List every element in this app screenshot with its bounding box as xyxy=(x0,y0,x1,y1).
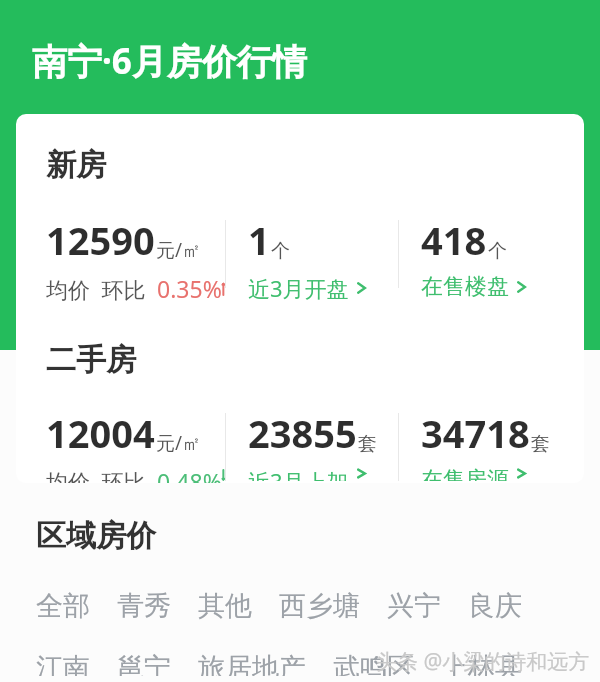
staticText: 全部 xyxy=(36,589,90,623)
staticText: 元/㎡ xyxy=(156,237,202,263)
staticText: 元/㎡ xyxy=(156,430,202,456)
staticText: 南宁·6月房价行情 xyxy=(32,37,307,85)
button[interactable]: 武鸣区 xyxy=(333,645,414,682)
button[interactable]: 全部 xyxy=(36,583,90,629)
button[interactable]: 旅居地产 xyxy=(198,645,306,682)
staticText: 新房 xyxy=(46,146,106,184)
staticText: 在售楼盘 xyxy=(421,273,509,301)
button[interactable]: 西乡塘 xyxy=(279,583,360,629)
button[interactable]: 兴宁 xyxy=(387,583,441,629)
button[interactable]: 其他 xyxy=(198,583,252,629)
staticText: 0.35% xyxy=(157,273,222,304)
staticText: 个 xyxy=(271,239,290,263)
staticText: 12004 xyxy=(46,407,155,459)
staticText: 近3月上架 xyxy=(248,466,349,481)
staticText: 套 xyxy=(358,432,377,456)
staticText: 均价 环比 xyxy=(46,274,157,304)
staticText: 旅居地产 xyxy=(198,651,306,676)
staticText: 西乡塘 xyxy=(279,589,360,623)
staticText: 23855 xyxy=(248,407,357,459)
staticText: 青秀 xyxy=(117,589,171,623)
button[interactable]: 23855 xyxy=(226,407,398,483)
staticText: 上林县 xyxy=(441,651,522,676)
staticText: 0.48% xyxy=(157,466,222,483)
staticText: 江南 xyxy=(36,651,90,676)
staticText: 在售房源 xyxy=(421,466,509,481)
staticText: 34718 xyxy=(421,407,530,459)
staticText: 12590 xyxy=(46,214,155,266)
staticText: 武鸣区 xyxy=(333,651,414,676)
button[interactable]: 1 xyxy=(226,214,398,305)
staticText: 个 xyxy=(488,239,507,263)
button[interactable]: 青秀 xyxy=(117,583,171,629)
staticText: 418 xyxy=(421,214,487,266)
button[interactable]: 良庆 xyxy=(468,583,522,629)
staticText: 套 xyxy=(531,432,550,456)
staticText: 区域房价 xyxy=(36,517,156,555)
staticText: 邕宁 xyxy=(117,651,171,676)
staticText: 兴宁 xyxy=(387,589,441,623)
staticText: 近3月开盘 xyxy=(248,273,349,303)
button[interactable]: 邕宁 xyxy=(117,645,171,682)
staticText: 头条 @小梁的诗和远方 xyxy=(376,647,590,676)
button[interactable]: 34718 xyxy=(399,407,584,483)
staticText: 良庆 xyxy=(468,589,522,623)
staticText: 均价 环比 xyxy=(46,466,157,483)
staticText: 1 xyxy=(248,214,270,266)
staticText: 二手房 xyxy=(46,341,136,379)
button[interactable]: 418 xyxy=(399,214,584,303)
staticText: 其他 xyxy=(198,589,252,623)
button[interactable]: 江南 xyxy=(36,645,90,682)
button[interactable]: 上林县 xyxy=(441,645,522,682)
